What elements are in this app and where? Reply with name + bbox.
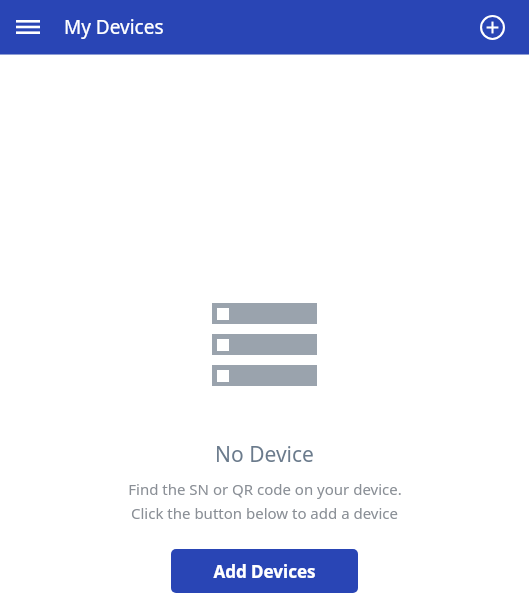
- button[interactable]: Add device: [473, 8, 511, 46]
- staticText: Click the button below to add a device: [131, 503, 398, 523]
- staticText: Find the SN or QR code on your device.: [128, 479, 402, 499]
- staticText: Add Devices: [213, 560, 316, 583]
- staticText: No Device: [215, 440, 314, 469]
- button[interactable]: Open navigation menu: [10, 9, 46, 45]
- staticText: My Devices: [64, 14, 164, 40]
- button[interactable]: Add Devices: [171, 549, 358, 593]
